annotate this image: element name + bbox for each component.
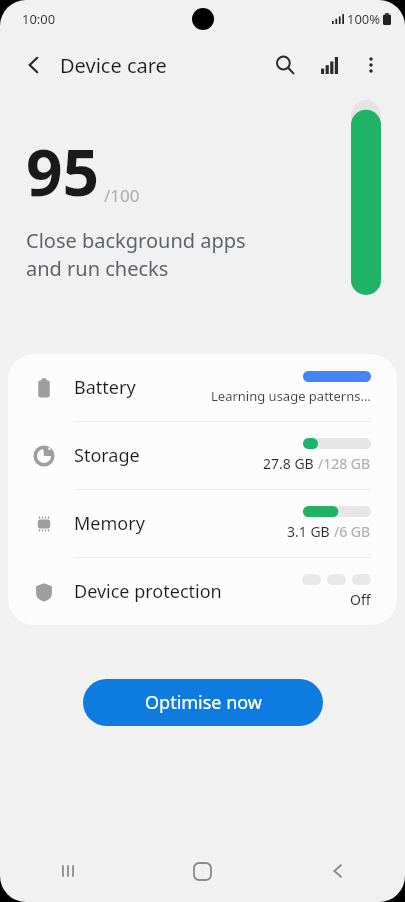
staticText: Device protection (74, 579, 222, 604)
staticText: Device care (60, 52, 167, 79)
staticText: /128 GB (318, 454, 371, 473)
staticText: 3.1 GB (287, 522, 334, 541)
button[interactable]: Usage statistics (307, 43, 351, 87)
staticText: Off (350, 590, 371, 609)
button[interactable]: Search (263, 43, 307, 87)
button[interactable]: Home (135, 840, 270, 902)
button[interactable]: Back (270, 840, 405, 902)
staticText: 10:00 (22, 10, 56, 28)
button[interactable]: Battery (8, 354, 397, 421)
button[interactable]: More options (351, 43, 391, 87)
staticText: Memory (74, 511, 145, 536)
staticText: /100 (104, 184, 140, 207)
button[interactable]: Storage (8, 422, 397, 489)
button[interactable]: Optimise now (83, 679, 323, 726)
button[interactable]: Memory (8, 490, 397, 557)
staticText: /6 GB (334, 522, 371, 541)
staticText: 27.8 GB (263, 454, 318, 473)
staticText: 95 (26, 128, 100, 215)
staticText: Storage (74, 443, 140, 468)
staticText: Learning usage patterns… (211, 387, 371, 405)
staticText: 100% (347, 10, 381, 28)
staticText: Optimise now (145, 690, 262, 715)
staticText: Close background apps and run checks (26, 227, 246, 282)
button[interactable]: Device protection (8, 558, 397, 625)
staticText: Battery (74, 375, 136, 400)
button[interactable]: Recent apps (0, 840, 135, 902)
button[interactable]: Back (14, 45, 54, 85)
